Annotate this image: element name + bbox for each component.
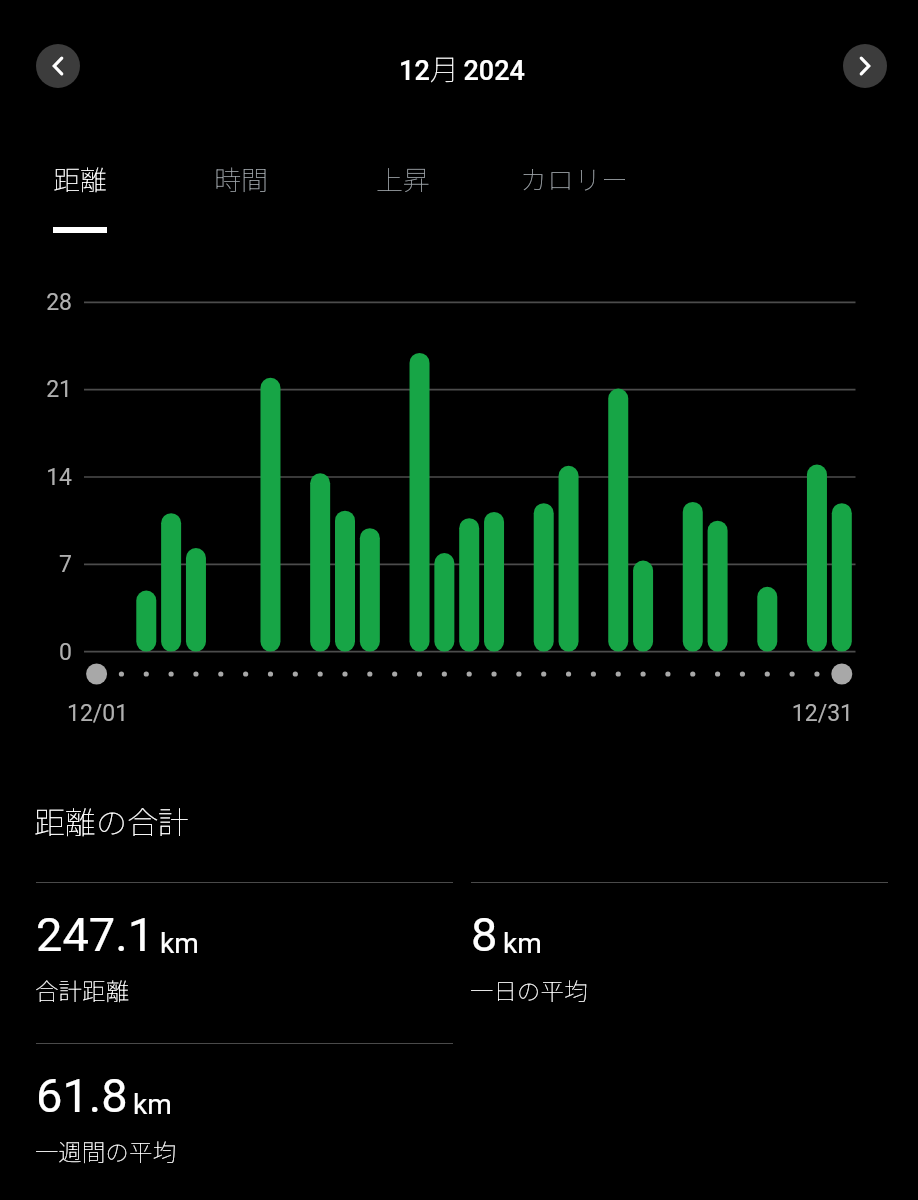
staticText: km [133,1088,172,1121]
button[interactable]: カロリー [491,140,657,236]
staticText: 61.8 [36,1068,128,1123]
staticText: 一日の平均 [470,973,588,1007]
staticText: 21 [0,376,72,403]
staticText: 上昇 [349,159,457,198]
staticText: カロリー [491,159,657,198]
staticText: 8 [471,907,498,962]
staticText: 時間 [187,159,295,198]
staticText: 12月 2024 [3,46,918,88]
staticText: km [160,927,199,960]
staticText: 7 [0,551,72,578]
staticText: 一週間の平均 [35,1134,176,1168]
staticText: 28 [0,289,72,316]
staticText: 距離 [26,159,134,198]
button[interactable]: Next month [843,44,887,88]
button[interactable]: 時間 [187,140,295,236]
staticText: 12/31 [0,700,853,727]
staticText: 12/01 [67,700,129,727]
staticText: 0 [0,639,72,666]
staticText: 距離の合計 [34,798,189,843]
staticText: 14 [0,464,72,491]
staticText: km [503,927,542,960]
button[interactable]: 上昇 [349,140,457,236]
button[interactable]: 距離 [26,140,134,236]
staticText: 合計距離 [35,973,129,1007]
button[interactable]: Previous month [36,44,80,88]
staticText: 247.1 [36,907,155,962]
